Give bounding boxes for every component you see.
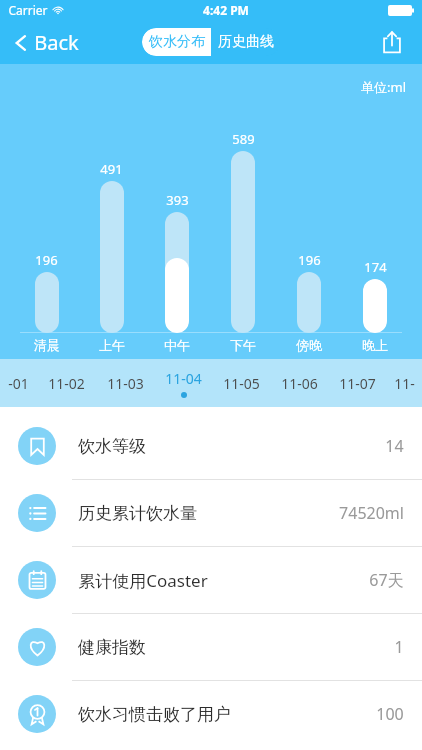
- staticText: 历史曲线: [218, 33, 274, 51]
- staticText: Carrier: [8, 2, 48, 18]
- staticText: 单位:ml: [361, 78, 406, 96]
- staticText: 67天: [369, 569, 404, 591]
- staticText: 196: [35, 251, 58, 269]
- staticText: 14: [385, 435, 404, 457]
- button[interactable]: 589: [210, 130, 276, 359]
- button[interactable]: 11-07: [328, 359, 386, 407]
- button[interactable]: 健康指数: [0, 614, 422, 680]
- button[interactable]: 491: [79, 160, 144, 359]
- button[interactable]: 11-02: [37, 359, 96, 407]
- staticText: 11-06: [281, 374, 318, 393]
- staticText: 11-: [394, 374, 415, 393]
- button[interactable]: Back: [0, 23, 89, 62]
- button[interactable]: 历史累计饮水量: [0, 480, 422, 546]
- staticText: 11-02: [48, 374, 85, 393]
- button[interactable]: 196: [14, 251, 79, 359]
- staticText: 11-03: [107, 374, 144, 393]
- staticText: 下午: [230, 337, 256, 353]
- staticText: 饮水等级: [78, 436, 146, 457]
- button[interactable]: 11-: [386, 359, 422, 407]
- staticText: 11-05: [223, 374, 260, 393]
- staticText: -01: [8, 374, 29, 393]
- staticText: 上午: [99, 337, 125, 353]
- staticText: 清晨: [34, 337, 60, 353]
- staticText: 100: [376, 703, 404, 725]
- staticText: 晚上: [362, 337, 388, 353]
- staticText: 1: [394, 636, 404, 658]
- button[interactable]: 11-04: [154, 359, 212, 407]
- button[interactable]: 11-03: [96, 359, 154, 407]
- button[interactable]: 393: [144, 191, 210, 359]
- button[interactable]: 饮水习惯击败了用户: [0, 681, 422, 747]
- button[interactable]: -01: [0, 359, 37, 407]
- staticText: 11-04: [165, 369, 202, 388]
- staticText: 历史累计饮水量: [78, 503, 197, 524]
- staticText: 74520ml: [339, 502, 404, 524]
- button[interactable]: 饮水分布: [142, 28, 211, 56]
- staticText: 491: [100, 160, 123, 178]
- staticText: 饮水分布: [149, 33, 205, 51]
- staticText: 589: [232, 130, 255, 148]
- staticText: 中午: [164, 337, 190, 353]
- staticText: 393: [166, 191, 189, 209]
- staticText: 174: [364, 258, 387, 276]
- staticText: 11-07: [339, 374, 376, 393]
- button[interactable]: 11-05: [212, 359, 270, 407]
- button[interactable]: 饮水等级: [0, 413, 422, 479]
- staticText: 健康指数: [78, 637, 146, 658]
- button[interactable]: 196: [276, 251, 342, 359]
- staticText: 4:42 PM: [203, 2, 249, 18]
- button[interactable]: Share: [372, 22, 412, 62]
- staticText: 饮水习惯击败了用户: [78, 704, 231, 725]
- button[interactable]: 历史曲线: [211, 28, 280, 56]
- staticText: 累计使用Coaster: [78, 569, 208, 592]
- button[interactable]: 11-06: [270, 359, 328, 407]
- staticText: Back: [34, 29, 79, 56]
- button[interactable]: 174: [342, 258, 408, 359]
- button[interactable]: 累计使用Coaster: [0, 547, 422, 613]
- staticText: 傍晚: [296, 337, 322, 353]
- staticText: 196: [298, 251, 321, 269]
